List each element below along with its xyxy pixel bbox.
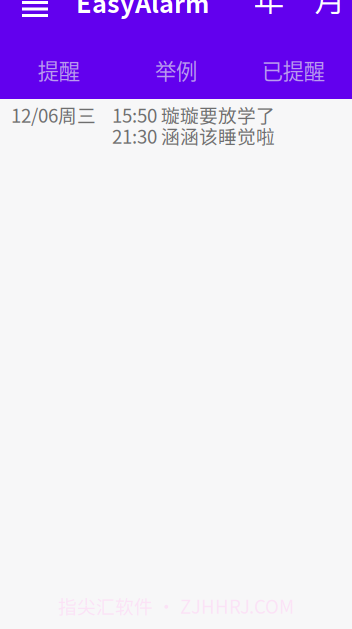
button[interactable]: Menu xyxy=(0,2,58,38)
staticText: 月 xyxy=(314,0,345,20)
staticText: 12/06周三 xyxy=(11,101,96,128)
button[interactable]: EasyAlarm xyxy=(58,2,209,38)
button[interactable]: 已提醒 xyxy=(235,17,352,99)
button[interactable]: 举例 xyxy=(117,17,235,99)
button[interactable]: 12/06周三 xyxy=(0,99,352,149)
button[interactable]: Month picker xyxy=(289,0,352,40)
staticText: 21:30 涵涵该睡觉啦 xyxy=(112,122,275,149)
button[interactable]: Year picker xyxy=(249,0,289,40)
staticText: 已提醒 xyxy=(262,55,325,85)
button[interactable]: 提醒 xyxy=(0,17,117,99)
staticText: 年 xyxy=(253,0,284,20)
staticText: EasyAlarm xyxy=(76,0,209,20)
staticText: 指尖汇软件 · ZJHHRJ.COM xyxy=(58,592,294,619)
staticText: 提醒 xyxy=(38,55,80,85)
staticText: 15:50 璇璇要放学了 xyxy=(112,101,275,128)
staticText: 举例 xyxy=(155,55,197,85)
